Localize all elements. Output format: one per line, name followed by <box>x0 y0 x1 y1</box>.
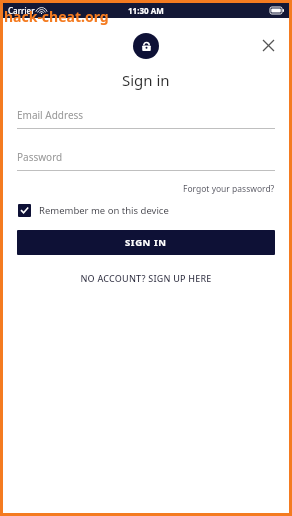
staticText: Email Address <box>17 108 84 122</box>
staticText: Remember me on this device <box>39 204 169 217</box>
staticText: 11:30 AM <box>128 5 164 16</box>
button[interactable]: Forgot your password? <box>183 182 275 196</box>
button[interactable]: Close <box>255 32 281 58</box>
staticText: Sign in <box>122 70 170 90</box>
staticText: Password <box>17 150 63 164</box>
staticText: NO ACCOUNT? SIGN UP HERE <box>80 272 212 284</box>
staticText: SIGN IN <box>125 236 167 249</box>
staticText: Forgot your password? <box>183 183 275 195</box>
staticText: hack-cheat.org <box>4 7 109 26</box>
staticText: Carrier <box>8 5 35 16</box>
button[interactable]: SIGN IN <box>17 230 275 255</box>
button[interactable]: NO ACCOUNT? SIGN UP HERE <box>80 270 212 286</box>
button[interactable]: Remember me on this device <box>17 204 275 217</box>
